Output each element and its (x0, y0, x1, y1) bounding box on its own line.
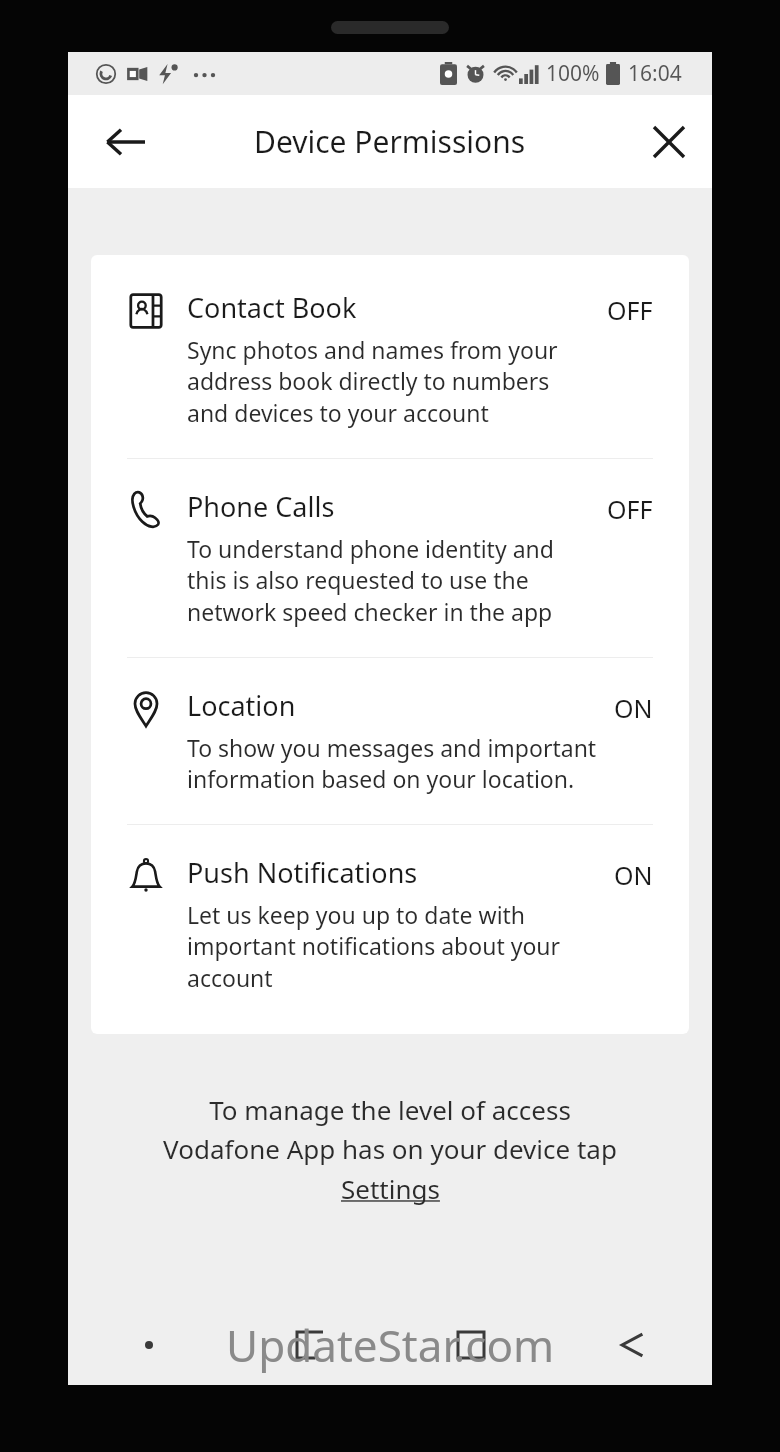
staticText: UpdateStar.com (226, 1315, 555, 1375)
staticText: Phone Calls (187, 488, 335, 525)
button[interactable]: Phone Calls (91, 459, 689, 657)
staticText: To understand phone identity and this is… (187, 533, 595, 628)
staticText: ON (614, 858, 653, 892)
staticText: Let us keep you up to date with importan… (187, 899, 602, 994)
button[interactable]: Back (92, 109, 158, 175)
button[interactable]: Location (91, 658, 689, 824)
button[interactable]: Recents (283, 1318, 337, 1372)
button[interactable]: Menu (122, 1318, 176, 1372)
staticText: Settings (341, 1171, 440, 1206)
button[interactable]: Push Notifications (91, 825, 689, 1034)
button[interactable]: Close (636, 109, 702, 175)
button[interactable]: Contact Book (91, 255, 689, 458)
button[interactable]: Settings (335, 1169, 446, 1208)
staticText: 100% (546, 59, 600, 88)
staticText: To show you messages and important infor… (187, 732, 602, 795)
staticText: Contact Book (187, 289, 357, 326)
button[interactable]: Home (444, 1318, 498, 1372)
staticText: Push Notifications (187, 854, 418, 891)
staticText: ON (614, 691, 653, 725)
button[interactable]: Back (605, 1318, 659, 1372)
staticText: Location (187, 687, 296, 724)
staticText: OFF (607, 492, 653, 526)
staticText: OFF (607, 293, 653, 327)
staticText: Sync photos and names from your address … (187, 334, 595, 429)
staticText: To manage the level of access Vodafone A… (163, 1092, 617, 1167)
staticText: Device Permissions (254, 121, 526, 162)
staticText: 16:04 (628, 59, 682, 88)
